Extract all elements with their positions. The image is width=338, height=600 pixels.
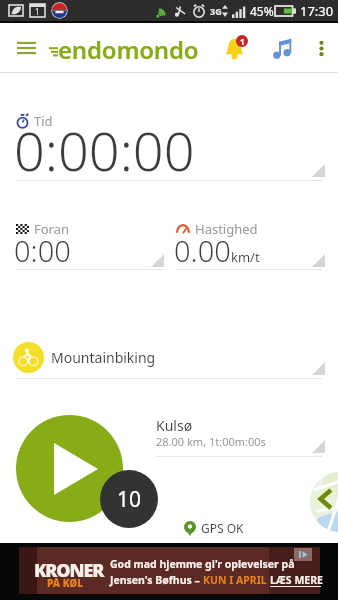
staticText: 10	[117, 485, 142, 514]
staticText: PÅ KØL	[47, 576, 84, 590]
staticText: KRONER	[34, 558, 104, 583]
button[interactable]: Notifications	[222, 23, 252, 73]
button[interactable]: Foran	[0, 216, 169, 270]
staticText: Mountainbiking	[51, 348, 156, 367]
button[interactable]: 10	[100, 470, 158, 528]
staticText: KUN I APRIL	[203, 573, 270, 587]
staticText: 1	[35, 6, 40, 17]
staticText: km/t	[231, 248, 260, 266]
staticText: 0:00:00	[14, 113, 195, 187]
staticText: endomondo	[58, 33, 199, 66]
staticText: 28.00 km, 1t:00m:00s	[156, 434, 266, 449]
staticText: 3G	[210, 5, 222, 17]
button[interactable]: Start workout	[16, 415, 123, 522]
staticText: Kulsø	[156, 416, 193, 435]
button[interactable]: Mountainbiking	[0, 340, 338, 380]
button[interactable]: Hastighed	[169, 216, 338, 270]
button[interactable]: Open map	[310, 472, 338, 532]
staticText: 17:30	[300, 2, 334, 20]
button[interactable]: Kulsø	[150, 412, 338, 458]
staticText: 0:00	[14, 231, 71, 270]
button[interactable]: GPS OK	[184, 518, 244, 538]
staticText: God mad hjemme gi'r oplevelser på	[110, 557, 295, 571]
staticText: Tid	[34, 112, 53, 130]
staticText: Jensen's Bøfhus –	[110, 573, 203, 587]
staticText: 0.00	[174, 231, 231, 270]
button[interactable]: More options	[308, 23, 334, 73]
staticText: 1	[240, 36, 245, 47]
button[interactable]: Tid	[0, 104, 338, 182]
button[interactable]: Music	[268, 23, 296, 73]
staticText: GPS OK	[201, 520, 244, 536]
staticText: 45%	[250, 3, 274, 19]
staticText: LÆS MERE	[270, 573, 323, 587]
button[interactable]: Advertisement	[19, 547, 320, 594]
staticText: Foran	[34, 220, 70, 238]
button[interactable]: Menu	[8, 23, 44, 73]
staticText: Hastighed	[195, 220, 258, 238]
